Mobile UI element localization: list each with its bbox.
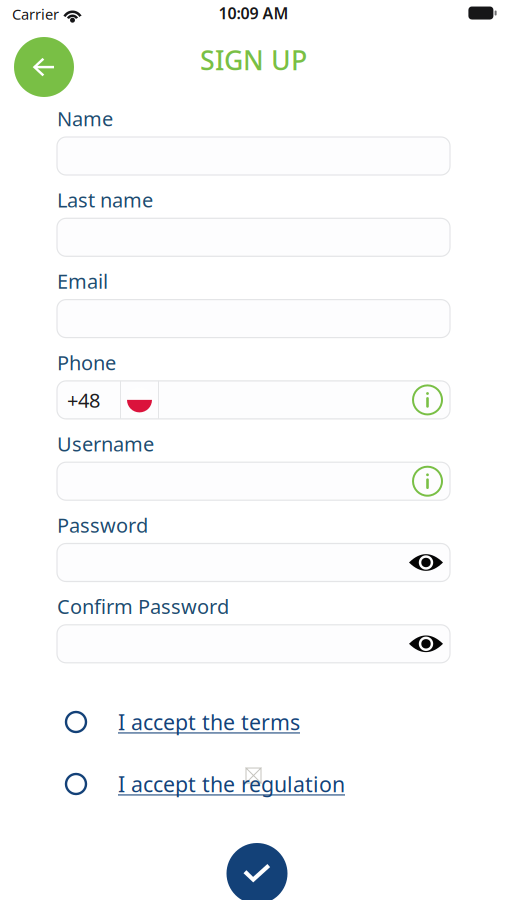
button[interactable]: Back [14, 37, 74, 97]
staticText: Username [57, 430, 154, 457]
button[interactable]: I accept the regulation [0, 769, 507, 799]
button[interactable]: I accept the terms [0, 707, 507, 737]
staticText: Password [57, 512, 148, 538]
button[interactable]: Show password [409, 551, 443, 574]
staticText: SIGN UP [200, 42, 307, 78]
staticText: Name [57, 105, 113, 132]
staticText: Last name [57, 186, 153, 213]
staticText: I accept the terms [118, 708, 300, 736]
button[interactable]: More info [412, 466, 443, 497]
staticText: Confirm Password [57, 593, 229, 620]
button[interactable]: Country code [127, 387, 152, 412]
staticText: I accept the regulation [118, 770, 345, 798]
button[interactable]: Submit [226, 843, 287, 900]
button[interactable]: Show password [409, 632, 443, 655]
button[interactable]: More info [412, 384, 443, 415]
staticText: Carrier [12, 4, 59, 24]
staticText: Email [57, 268, 108, 294]
staticText: +48 [67, 387, 100, 413]
staticText: Phone [57, 349, 116, 376]
image [245, 767, 261, 783]
staticText: 10:09 AM [218, 2, 288, 24]
